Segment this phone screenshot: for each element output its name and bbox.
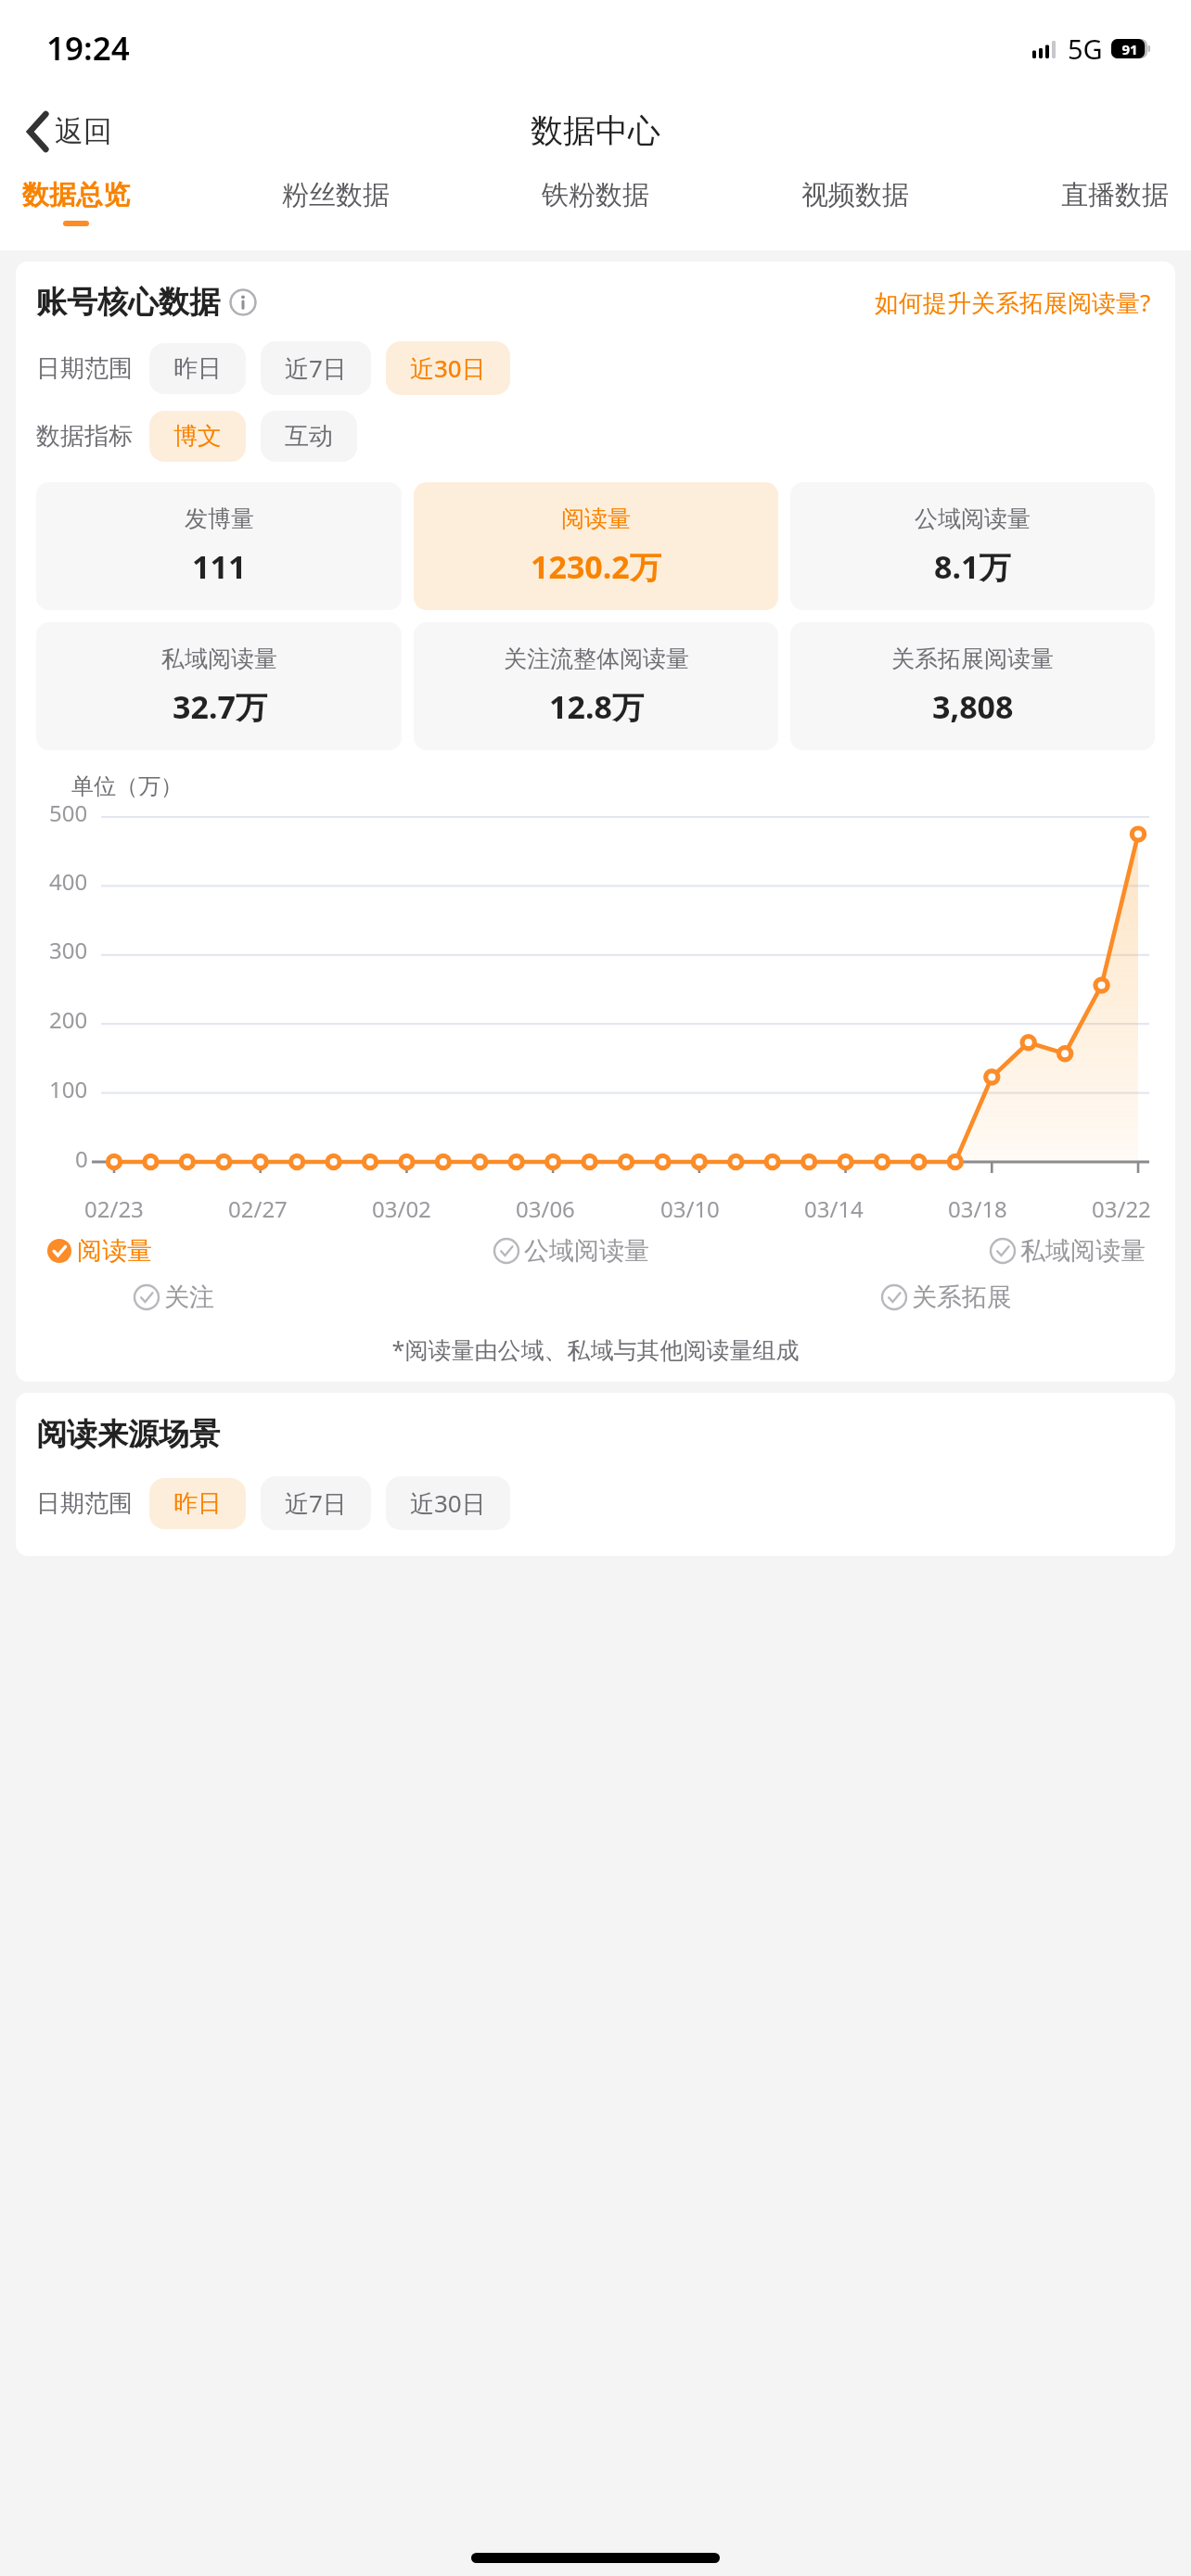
staticText: 数据中心 [531, 110, 660, 151]
staticText: 02/27 [228, 1193, 288, 1224]
staticText: 私域阅读量 [161, 644, 277, 673]
staticText: 阅读来源场景 [36, 1415, 220, 1454]
button[interactable]: 近30日 [386, 341, 510, 395]
staticText: 111 [192, 545, 247, 588]
staticText: 近30日 [410, 351, 486, 385]
staticText: 公域阅读量 [524, 1235, 649, 1267]
staticText: 03/18 [948, 1193, 1007, 1224]
staticText: 铁粉数据 [542, 178, 649, 212]
staticText: 03/10 [660, 1193, 720, 1224]
staticText: 昨日 [173, 353, 222, 384]
staticText: 500 [49, 797, 88, 828]
staticText: 返回 [55, 113, 112, 149]
button[interactable]: 阅读量 [42, 1231, 156, 1270]
button[interactable]: 发博量 [36, 482, 402, 610]
staticText: 日期范围 [36, 353, 133, 384]
button[interactable]: 视频数据 [792, 172, 918, 232]
staticText: 5G [1068, 31, 1103, 67]
button[interactable]: 公域阅读量 [790, 482, 1155, 610]
staticText: 19:24 [46, 26, 130, 70]
button[interactable]: 近7日 [261, 1476, 371, 1530]
staticText: 直播数据 [1061, 178, 1169, 212]
staticText: 私域阅读量 [1020, 1235, 1146, 1267]
staticText: 8.1万 [934, 545, 1011, 588]
button[interactable]: 关注 [129, 1278, 218, 1317]
staticText: 03/02 [372, 1193, 431, 1224]
staticText: 近7日 [285, 1486, 347, 1520]
staticText: 视频数据 [801, 178, 909, 212]
staticText: 02/23 [84, 1193, 144, 1224]
button[interactable]: 关系拓展 [877, 1278, 1016, 1317]
button[interactable]: 昨日 [149, 1478, 246, 1529]
staticText: 粉丝数据 [282, 178, 390, 212]
staticText: 账号核心数据 [36, 283, 220, 322]
button[interactable]: 铁粉数据 [532, 172, 659, 232]
staticText: 关系拓展 [912, 1282, 1012, 1313]
button[interactable]: 私域阅读量 [985, 1231, 1149, 1270]
button[interactable]: 返回 [22, 108, 118, 155]
staticText: 数据指标 [36, 421, 133, 452]
staticText: 300 [49, 935, 88, 965]
staticText: 关系拓展阅读量 [891, 644, 1054, 673]
staticText: 互动 [285, 421, 333, 452]
button[interactable]: 数据总览 [13, 172, 139, 232]
staticText: 200 [49, 1004, 88, 1035]
staticText: 03/22 [1092, 1193, 1151, 1224]
staticText: 3,808 [932, 685, 1014, 728]
staticText: 400 [49, 866, 88, 897]
button[interactable]: 说明 [229, 288, 257, 316]
staticText: 博文 [173, 421, 222, 452]
staticText: 数据总览 [22, 178, 130, 212]
staticText: 12.8万 [549, 685, 644, 728]
staticText: 日期范围 [36, 1488, 133, 1519]
staticText: 32.7万 [173, 685, 267, 728]
button[interactable]: 博文 [149, 411, 246, 462]
staticText: 1230.2万 [531, 545, 661, 588]
staticText: 发博量 [185, 504, 254, 533]
button[interactable]: 近7日 [261, 341, 371, 395]
staticText: *阅读量由公域、私域与其他阅读量组成 [36, 1333, 1155, 1365]
button[interactable]: 关注流整体阅读量 [414, 622, 778, 750]
staticText: 关注流整体阅读量 [504, 644, 689, 673]
staticText: 近7日 [285, 351, 347, 385]
staticText: 阅读量 [77, 1235, 152, 1267]
staticText: 昨日 [173, 1488, 222, 1519]
staticText: 100 [49, 1074, 88, 1104]
button[interactable]: 直播数据 [1052, 172, 1178, 232]
staticText: 近30日 [410, 1486, 486, 1520]
staticText: 91 [1116, 40, 1144, 58]
button[interactable]: 公域阅读量 [489, 1231, 653, 1270]
button[interactable]: 粉丝数据 [273, 172, 399, 232]
button[interactable]: 昨日 [149, 343, 246, 394]
staticText: 0 [75, 1143, 88, 1174]
button[interactable]: 近30日 [386, 1476, 510, 1530]
button[interactable]: 阅读量 [414, 482, 778, 610]
button[interactable]: 关系拓展阅读量 [790, 622, 1155, 750]
staticText: 关注 [164, 1282, 214, 1313]
staticText: 03/14 [804, 1193, 864, 1224]
button[interactable]: 如何提升关系拓展阅读量? [871, 282, 1155, 323]
staticText: 公域阅读量 [915, 504, 1031, 533]
staticText: 03/06 [516, 1193, 575, 1224]
button[interactable]: 私域阅读量 [36, 622, 402, 750]
staticText: 单位（万） [71, 772, 183, 800]
button[interactable]: 互动 [261, 411, 357, 462]
staticText: 阅读量 [561, 504, 631, 533]
